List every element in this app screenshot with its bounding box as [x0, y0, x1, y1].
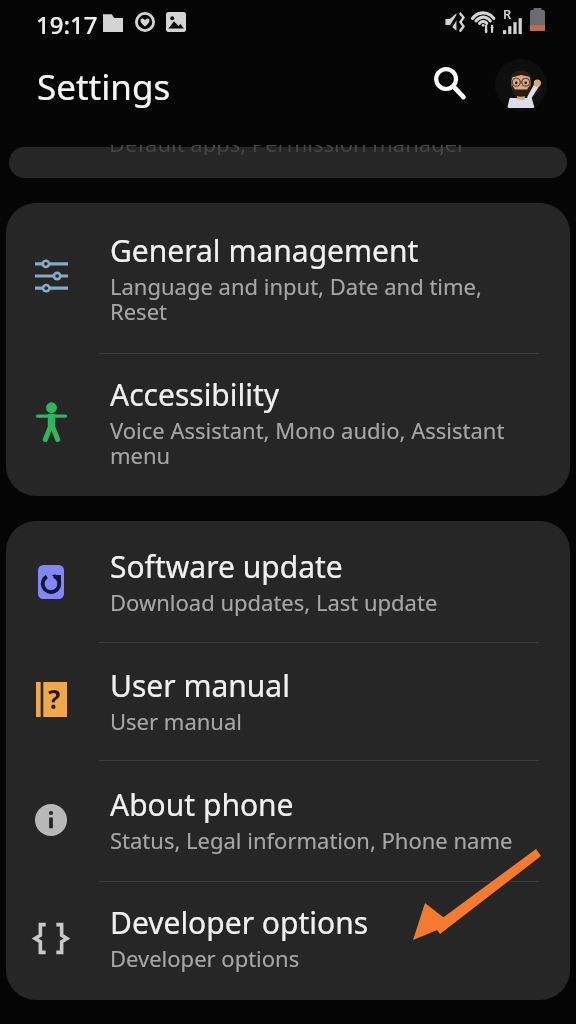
staticText: Download updates, Last update	[110, 587, 438, 617]
staticText: User manual	[110, 665, 290, 706]
button[interactable]: ?	[6, 643, 570, 760]
button[interactable]	[0, 145, 576, 178]
staticText: General management	[110, 230, 419, 271]
staticText: Developer options	[110, 943, 300, 973]
button[interactable]: Accessibility	[6, 354, 570, 496]
staticText: Developer options	[110, 902, 369, 943]
staticText: Language and input, Date and time, Reset	[110, 271, 522, 326]
button[interactable]: About phone	[6, 761, 570, 881]
button[interactable]: Account	[495, 59, 547, 111]
staticText: 19:17	[36, 8, 98, 41]
staticText: Software update	[110, 546, 343, 587]
staticText: About phone	[110, 784, 294, 825]
staticText: User manual	[110, 706, 242, 736]
button[interactable]: Search	[424, 57, 476, 109]
staticText: Voice Assistant, Mono audio, Assistant m…	[110, 415, 522, 470]
staticText: ?	[48, 681, 61, 716]
button[interactable]: Software update	[6, 521, 570, 642]
button[interactable]: General management	[6, 203, 570, 353]
button[interactable]: Developer options	[6, 882, 570, 1000]
staticText: Settings	[37, 63, 171, 111]
staticText: Accessibility	[110, 374, 280, 415]
staticText: Status, Legal information, Phone name	[110, 825, 513, 855]
staticText: R	[503, 5, 512, 23]
